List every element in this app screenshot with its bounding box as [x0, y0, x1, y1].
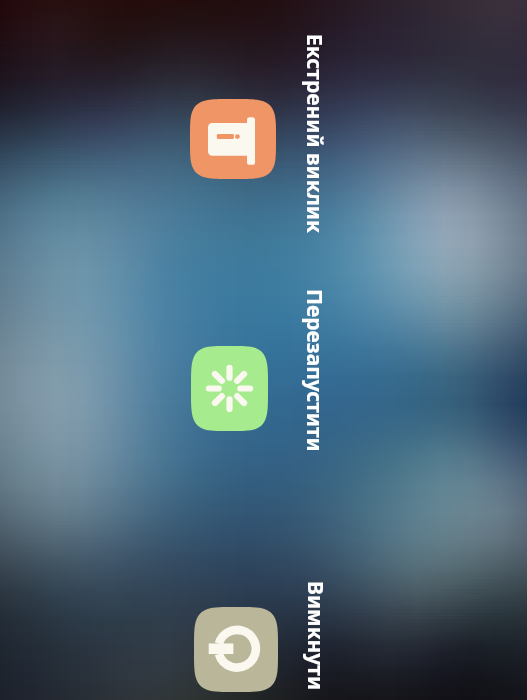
button[interactable]: Екстрений виклик — [301, 34, 329, 74]
staticText: Вимкнути — [301, 581, 330, 691]
button[interactable]: Вимкнути — [194, 607, 278, 692]
staticText: Екстрений виклик — [300, 34, 329, 233]
button[interactable]: Вимкнути — [302, 581, 330, 621]
button[interactable]: Екстрений виклик — [190, 99, 276, 179]
button[interactable]: Перезапустити — [301, 289, 329, 329]
button[interactable]: Перезапустити — [191, 346, 268, 431]
staticText: Перезапустити — [300, 289, 329, 452]
